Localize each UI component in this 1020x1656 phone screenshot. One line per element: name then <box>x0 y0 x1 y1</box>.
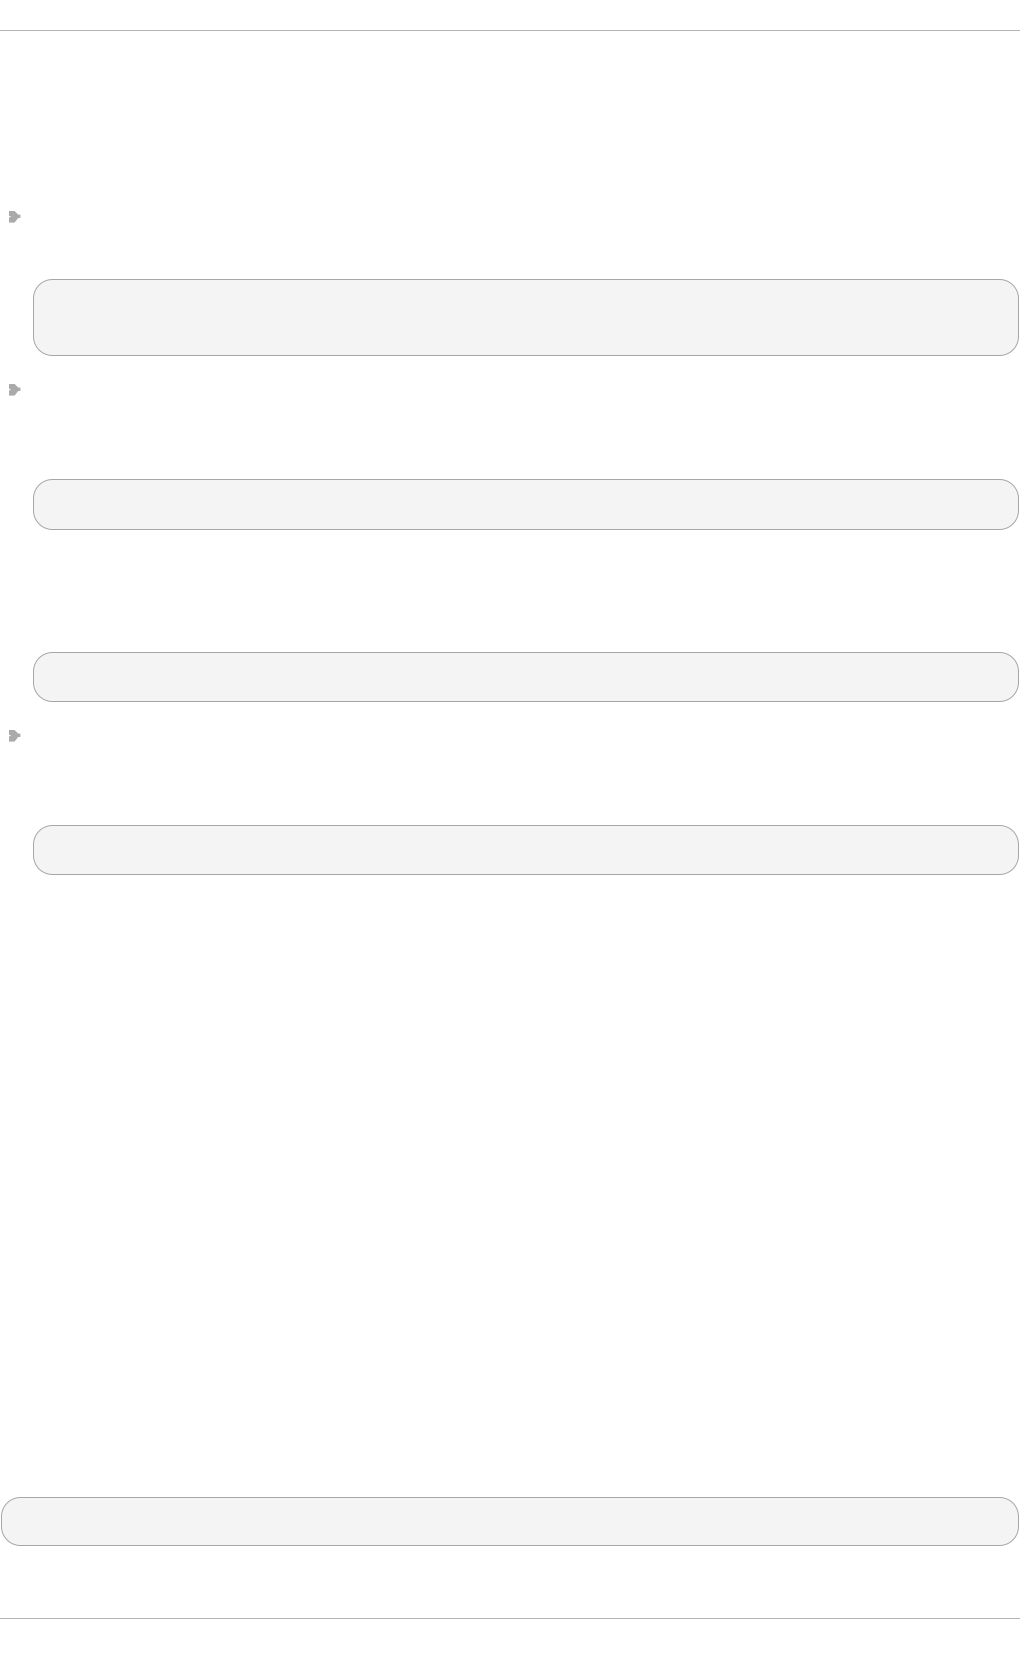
button[interactable]: Compose <box>1 1497 1018 1545</box>
button[interactable]: Field 1 <box>33 479 1018 529</box>
button[interactable]: Field 2 <box>33 652 1018 701</box>
button[interactable]: Text area <box>33 279 1018 355</box>
